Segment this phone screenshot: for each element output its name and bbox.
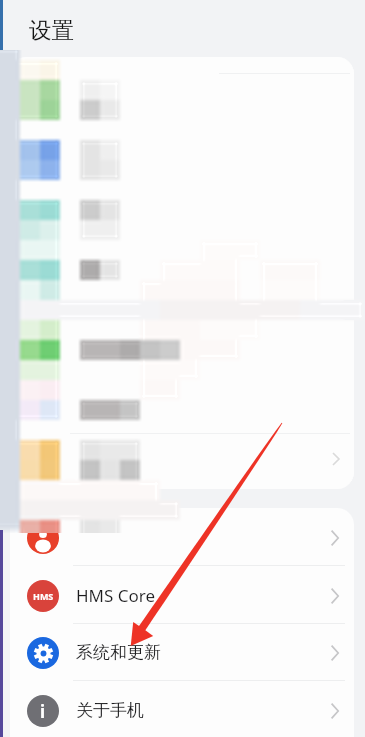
button[interactable]: 系统和更新 [10, 624, 354, 681]
button[interactable]: i [10, 682, 354, 737]
staticText: HMS [33, 590, 54, 602]
staticText: i [40, 700, 46, 723]
staticText: 系统和更新 [76, 642, 161, 663]
button[interactable]: 华为帐号 [10, 509, 354, 566]
staticText: HMS Core [76, 584, 156, 607]
button[interactable]: HMS [10, 567, 354, 624]
staticText: 关于手机 [76, 700, 144, 721]
staticText: 设置 [29, 16, 74, 44]
